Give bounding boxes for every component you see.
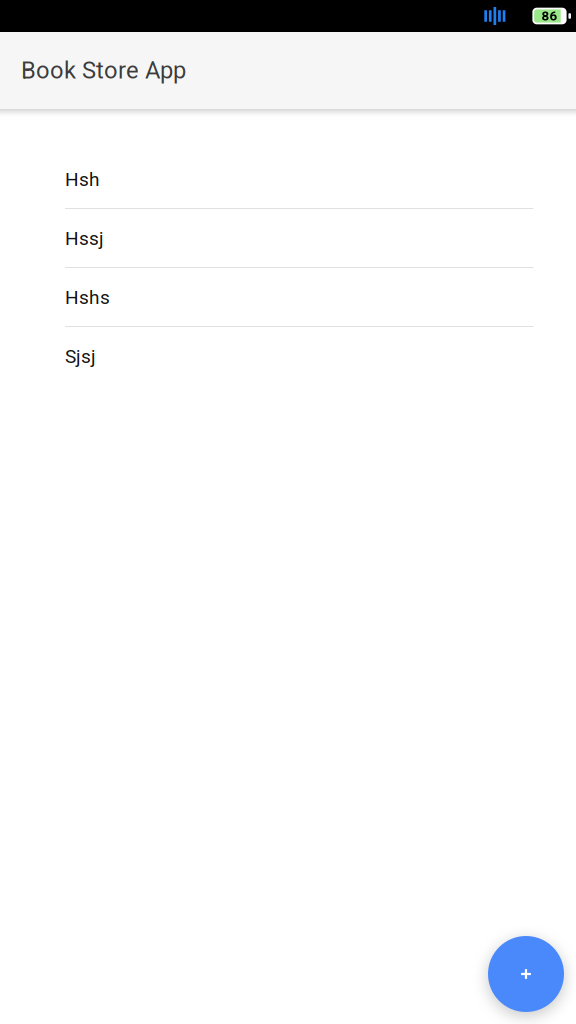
staticText: 86	[541, 8, 557, 24]
staticText: Book Store App	[21, 57, 186, 84]
staticText: Hssj	[65, 227, 104, 250]
staticText: Hsh	[65, 168, 100, 191]
staticText: Sjsj	[65, 345, 96, 367]
button[interactable]: Add book	[488, 936, 564, 1012]
button[interactable]: Hssj	[0, 209, 576, 268]
button[interactable]: Sjsj	[0, 327, 576, 386]
button[interactable]: Hshs	[0, 268, 576, 327]
staticText: Hshs	[65, 286, 110, 309]
button[interactable]: Hsh	[0, 150, 576, 209]
